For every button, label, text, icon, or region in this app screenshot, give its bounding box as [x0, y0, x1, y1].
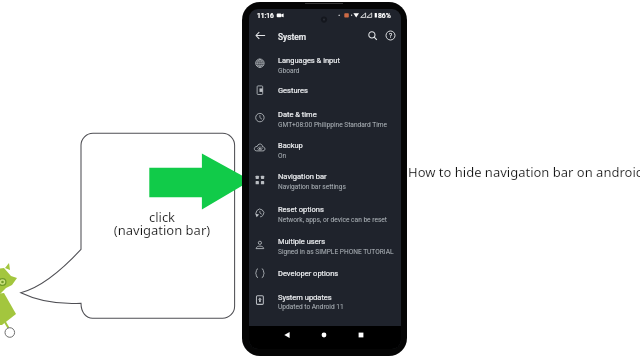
staticText: On: [278, 152, 287, 160]
staticText: Developer options: [278, 269, 339, 278]
button[interactable]: Home: [311, 324, 337, 346]
button[interactable]: Back: [274, 324, 300, 346]
staticText: Network, apps, or device can be reset: [278, 216, 387, 224]
staticText: Multiple users: [278, 237, 326, 246]
staticText: 86%: [378, 12, 391, 20]
staticText: click: [1, 208, 323, 226]
staticText: Gboard: [278, 67, 300, 75]
staticText: ?: [389, 32, 393, 40]
button[interactable]: [249, 164, 401, 196]
button[interactable]: [249, 284, 401, 316]
staticText: Date & time: [278, 110, 317, 119]
staticText: (navigation bar): [1, 221, 323, 239]
staticText: Reset options: [278, 205, 324, 214]
button[interactable]: [249, 229, 401, 261]
staticText: How to hide navigation bar on android: [408, 163, 640, 181]
staticText: 11:16: [257, 12, 274, 20]
staticText: Gestures: [278, 86, 308, 95]
button[interactable]: [249, 78, 401, 102]
staticText: Navigation bar: [278, 172, 327, 181]
button[interactable]: Recents: [348, 324, 374, 346]
button[interactable]: Back: [251, 26, 270, 45]
staticText: Updated to Android 11: [278, 303, 344, 311]
staticText: Backup: [278, 141, 303, 150]
button[interactable]: Help: [381, 26, 400, 45]
staticText: System updates: [278, 293, 332, 302]
staticText: Signed in as SIMPLE PHONE TUTORIAL: [278, 248, 394, 256]
button[interactable]: [249, 261, 401, 285]
button[interactable]: [249, 47, 401, 79]
staticText: GMT+08:00 Philippine Standard Time: [278, 121, 388, 129]
staticText: Languages & input: [278, 56, 340, 65]
button[interactable]: [249, 102, 401, 134]
button[interactable]: [249, 133, 401, 165]
staticText: System: [278, 32, 307, 42]
button[interactable]: [249, 197, 401, 229]
staticText: Navigation bar settings: [278, 183, 346, 191]
button[interactable]: Search: [363, 26, 382, 45]
